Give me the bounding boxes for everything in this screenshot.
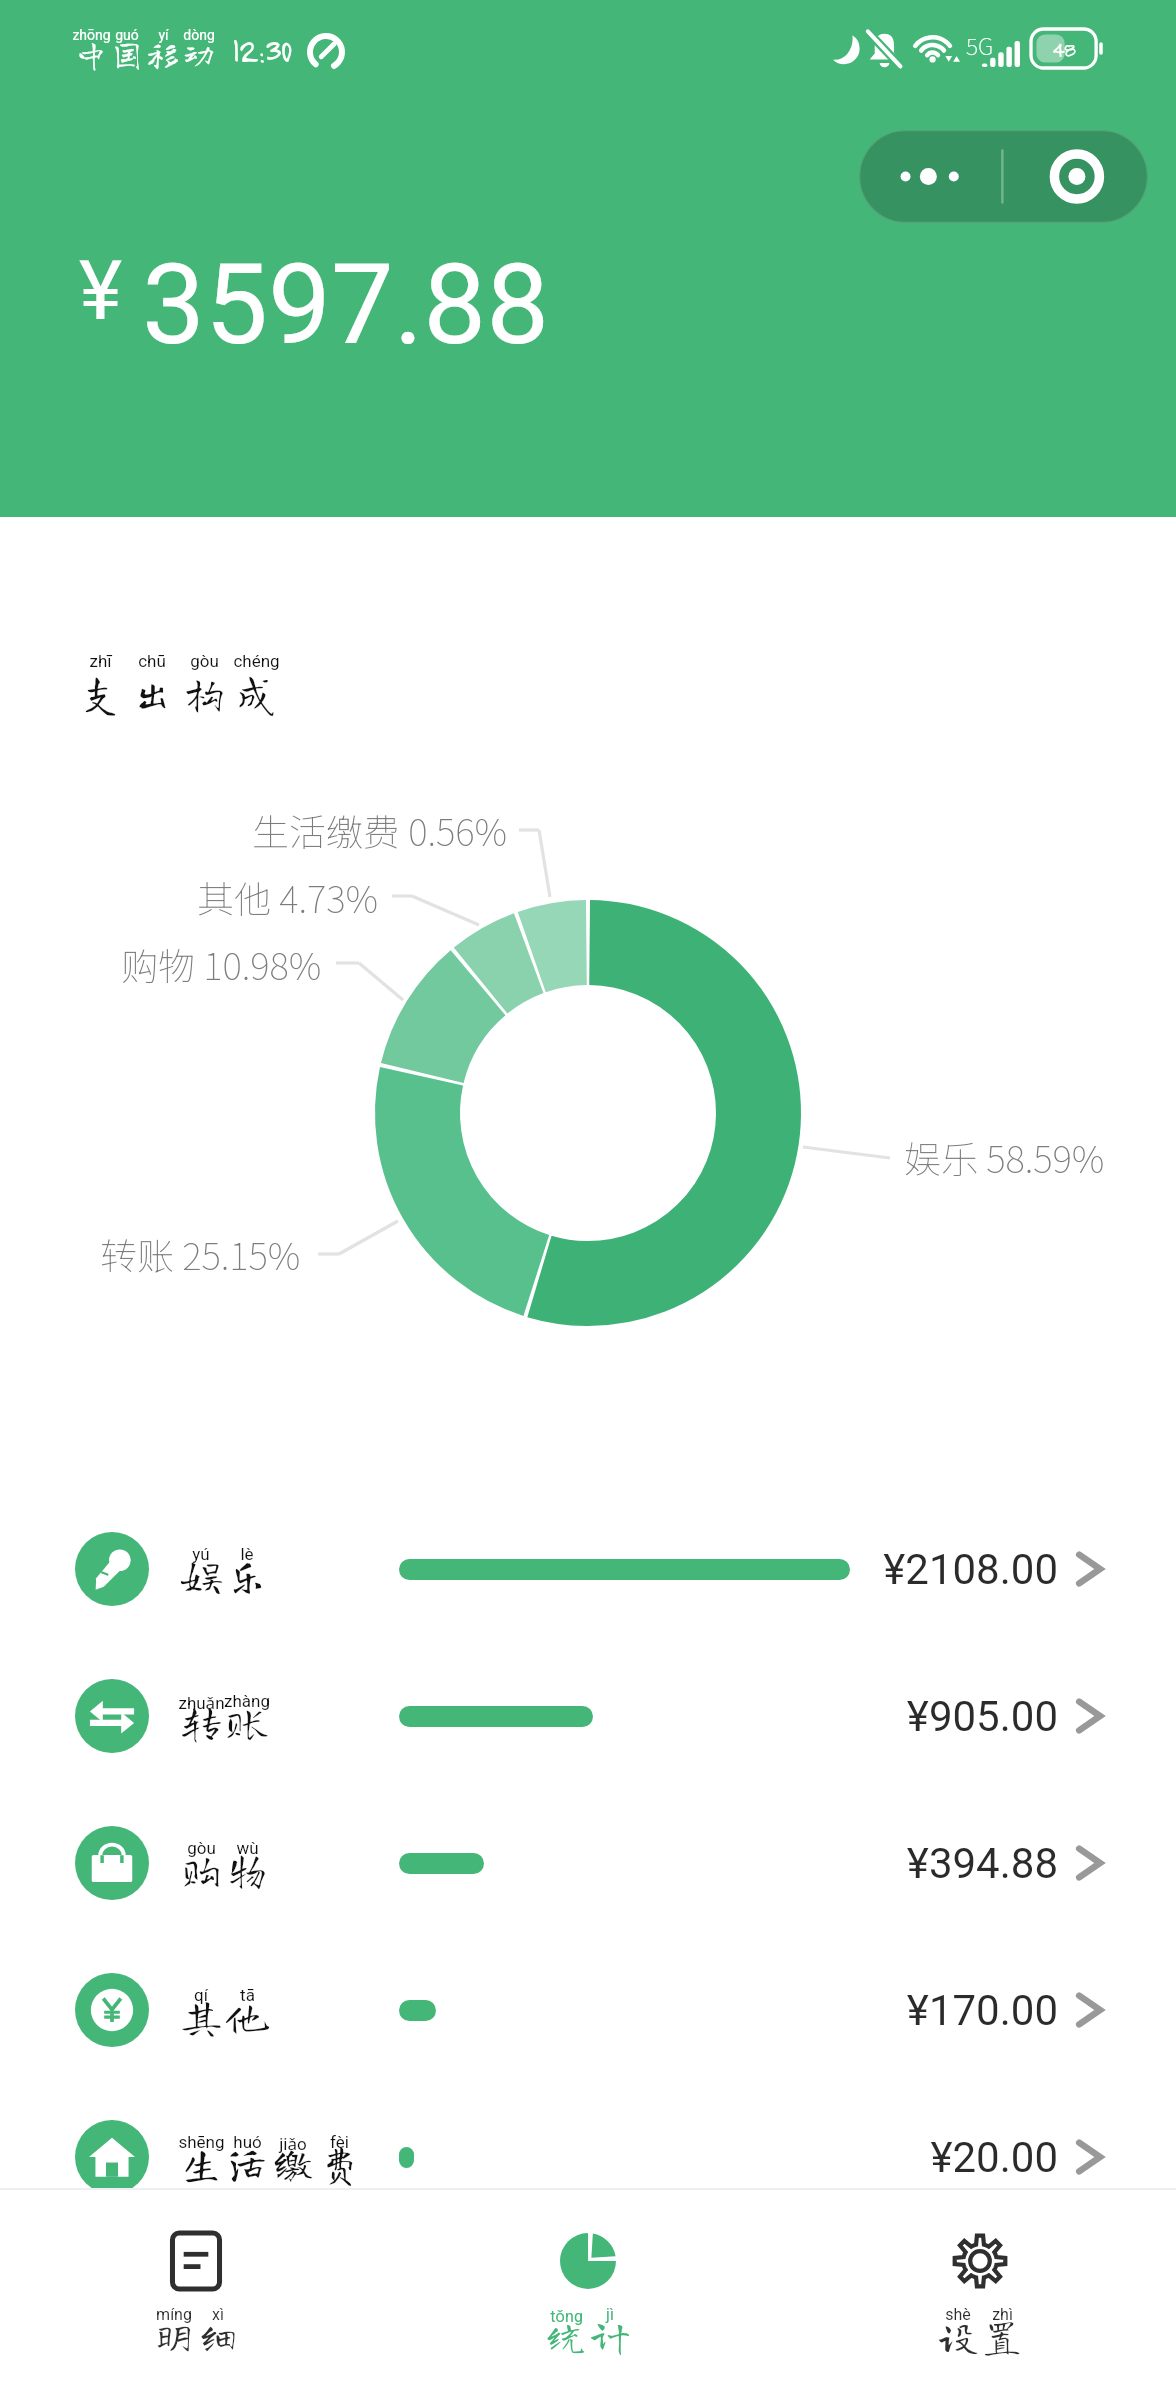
button[interactable]: tǒng (392, 2190, 784, 2400)
staticText: 动 (182, 37, 216, 71)
button[interactable]: gòu (0, 1788, 1176, 1938)
staticText: zhuǎn (178, 1691, 225, 1714)
staticText: 他 (226, 1995, 269, 2037)
staticText: 国 (110, 37, 144, 71)
button[interactable]: shè (784, 2190, 1176, 2400)
staticText: 转账 25.15% (100, 1227, 301, 1281)
staticText: 细 (198, 2316, 238, 2356)
staticText: 娱 (180, 1554, 223, 1596)
staticText: 48 (1052, 35, 1075, 62)
staticText: zhī (89, 651, 112, 671)
staticText: 生活缴费 0.56% (252, 803, 508, 857)
staticText: shēng (178, 2132, 225, 2152)
staticText: 活 (226, 2142, 269, 2184)
staticText: zhì (992, 2305, 1013, 2324)
staticText: 出 (131, 672, 174, 714)
staticText: shè (945, 2305, 971, 2324)
staticText: 转 (180, 1701, 223, 1743)
staticText: zhōng (72, 27, 111, 43)
staticText: ¥905.00 (906, 1692, 1058, 1741)
staticText: ¥ (79, 243, 123, 339)
staticText: yí (158, 27, 169, 43)
staticText: 缴 (272, 2142, 315, 2184)
staticText: fèi (330, 2132, 349, 2152)
staticText: 构 (183, 672, 226, 714)
staticText: chū (138, 651, 166, 671)
staticText: 生 (180, 2142, 223, 2184)
staticText: tā (240, 1985, 255, 2005)
staticText: 成 (235, 672, 278, 714)
staticText: jiǎo (279, 2132, 307, 2155)
staticText: 购物 10.98% (121, 937, 322, 991)
staticText: 统 (546, 2316, 586, 2356)
staticText: ¥2108.00 (883, 1545, 1058, 1594)
staticText: 中 (74, 37, 108, 71)
staticText: zhàng (224, 1691, 270, 1711)
staticText: míng (156, 2305, 192, 2324)
staticText: 乐 (226, 1554, 269, 1596)
staticText: 费 (318, 2142, 361, 2184)
staticText: huó (233, 2132, 262, 2152)
staticText: 物 (226, 1848, 269, 1890)
staticText: 12:30 (232, 30, 291, 70)
staticText: gòu (187, 1838, 216, 1858)
staticText: gòu (190, 651, 219, 671)
staticText: chéng (233, 651, 280, 671)
staticText: ¥170.00 (906, 1986, 1058, 2035)
staticText: guó (115, 27, 139, 43)
button[interactable]: yú (0, 1494, 1176, 1644)
staticText: 3597.88 (142, 239, 550, 370)
staticText: 购 (180, 1848, 223, 1890)
button[interactable]: míng (0, 2190, 392, 2400)
staticText: lè (240, 1544, 254, 1564)
staticText: 其他 4.73% (197, 870, 379, 924)
staticText: dòng (183, 27, 215, 43)
staticText: 计 (590, 2316, 630, 2356)
button[interactable]: Mini program menu (859, 130, 1148, 223)
button[interactable]: qí (0, 1935, 1176, 2085)
button[interactable]: shēng (0, 2082, 1176, 2232)
staticText: qí (194, 1985, 208, 2005)
staticText: 支 (79, 672, 122, 714)
staticText: ¥20.00 (930, 2133, 1058, 2182)
staticText: tǒng (550, 2305, 583, 2327)
staticText: 娱乐 58.59% (904, 1130, 1105, 1184)
staticText: xì (212, 2305, 224, 2324)
staticText: wù (236, 1838, 259, 1858)
staticText: 账 (226, 1701, 269, 1743)
staticText: 移 (146, 37, 180, 71)
staticText: ¥394.88 (906, 1839, 1058, 1888)
staticText: 明 (154, 2316, 194, 2356)
staticText: 5G (966, 28, 994, 61)
staticText: 置 (982, 2316, 1022, 2356)
button[interactable]: zhuǎn (0, 1641, 1176, 1791)
staticText: jì (606, 2305, 614, 2324)
staticText: 设 (938, 2316, 978, 2356)
staticText: 其 (180, 1995, 223, 2037)
staticText: yú (192, 1544, 210, 1564)
